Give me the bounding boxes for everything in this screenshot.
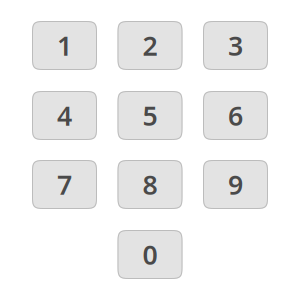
button[interactable]: 1 bbox=[32, 21, 97, 70]
staticText: 1 bbox=[57, 28, 72, 63]
staticText: 3 bbox=[228, 28, 243, 63]
button[interactable]: 3 bbox=[203, 21, 268, 70]
staticText: 0 bbox=[142, 237, 157, 272]
button[interactable]: 5 bbox=[117, 91, 182, 140]
staticText: 5 bbox=[142, 98, 157, 133]
button[interactable]: 2 bbox=[117, 21, 182, 70]
button[interactable]: 4 bbox=[32, 91, 97, 140]
button[interactable]: 0 bbox=[117, 230, 182, 279]
staticText: 2 bbox=[142, 28, 157, 63]
button[interactable]: 8 bbox=[117, 160, 182, 209]
staticText: 8 bbox=[142, 167, 157, 202]
staticText: 6 bbox=[228, 98, 243, 133]
staticText: 4 bbox=[57, 98, 72, 133]
button[interactable]: 7 bbox=[32, 160, 97, 209]
staticText: 7 bbox=[57, 167, 72, 202]
staticText: 9 bbox=[228, 167, 243, 202]
button[interactable]: 9 bbox=[203, 160, 268, 209]
button[interactable]: 6 bbox=[203, 91, 268, 140]
